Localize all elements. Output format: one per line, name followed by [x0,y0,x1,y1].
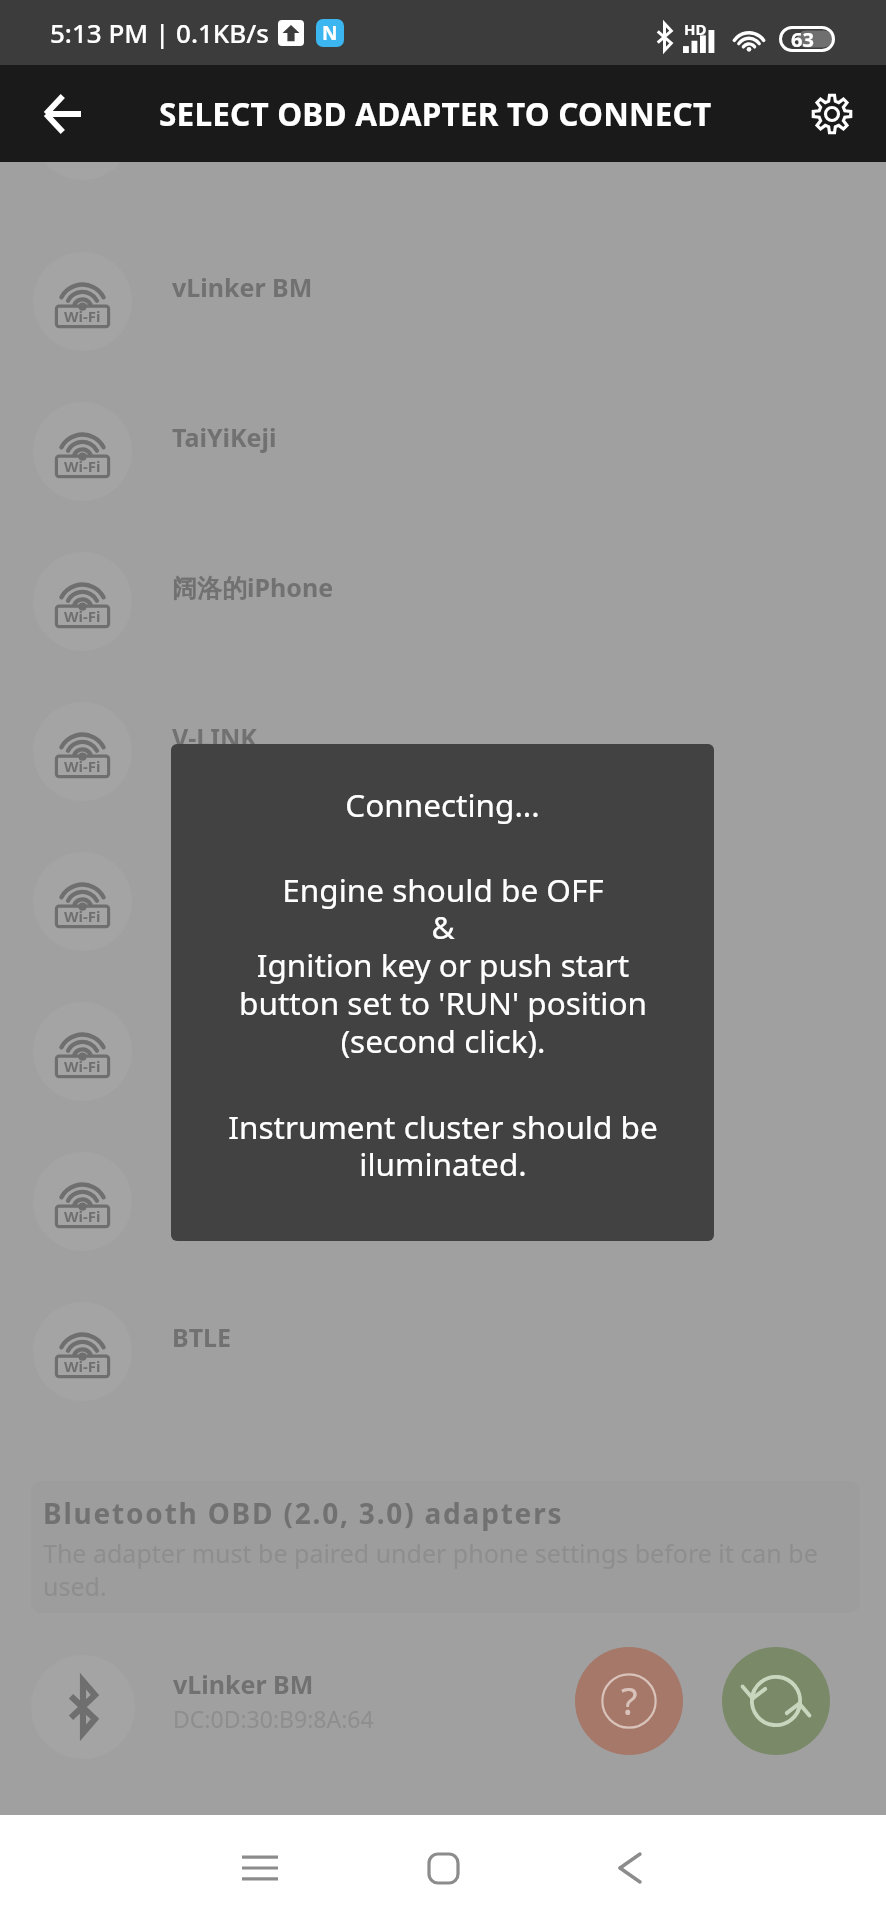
staticText: 阔洛的iPhone [172,570,334,604]
staticText: N [322,20,338,46]
staticText: Wi-Fi [64,1206,101,1226]
button[interactable]: Wi-Fi [0,526,886,676]
staticText: Wi-Fi [64,606,101,626]
button[interactable]: Wi-Fi [0,976,886,1126]
button[interactable]: Back [22,74,102,154]
button[interactable]: Wi-Fi [0,1276,886,1426]
button[interactable]: Wi-Fi [0,1126,886,1276]
staticText: Wi-Fi [64,456,101,476]
button[interactable]: Settings [794,76,870,152]
staticText: DC:0D:30:B9:8A:64 [173,1703,374,1734]
button[interactable]: Refresh [722,1647,830,1755]
staticText: Wi-Fi [64,1056,101,1076]
button[interactable]: Wi-Fi [0,826,886,976]
staticText: Connecting... [345,783,540,826]
staticText: TaiYiKeji [172,420,277,454]
staticText: HD [684,19,707,39]
staticText: Wi-Fi [64,306,101,326]
staticText: 63 [791,26,814,52]
staticText: SELECT OBD ADAPTER TO CONNECT [159,92,712,135]
staticText: BTLE [172,1320,232,1354]
button[interactable]: Wi-Fi [0,226,886,376]
staticText: Wi-Fi [64,756,101,776]
staticText: Engine should be OFF & Ignition key or p… [239,868,647,1063]
button[interactable]: Wi-Fi [0,55,886,205]
staticText: Wi-Fi [64,906,101,926]
staticText: vLinker BM [172,270,313,304]
button[interactable]: vLinker BM [0,1632,886,1782]
staticText: V-LINK [172,720,257,754]
button[interactable]: Home [398,1823,488,1913]
button[interactable]: Help [575,1647,683,1755]
staticText: Bluetooth OBD (2.0, 3.0) adapters [43,1494,564,1532]
staticText: ? [621,1674,638,1726]
button[interactable]: Wi-Fi [0,676,886,826]
button[interactable]: Back [585,1823,675,1913]
staticText: 5:13 PM | 0.1KB/s [50,15,269,50]
staticText: The adapter must be paired under phone s… [43,1536,844,1603]
button[interactable]: Recent apps [215,1823,305,1913]
staticText: vLinker BM [173,1667,314,1701]
button[interactable]: Wi-Fi [0,376,886,526]
staticText: Instrument cluster should be iluminated. [228,1105,658,1186]
staticText: Wi-Fi [64,1356,101,1376]
